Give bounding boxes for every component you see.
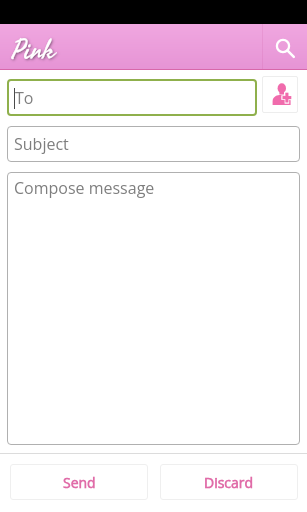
button[interactable]: Add contact [262, 76, 298, 113]
button[interactable]: Discard [160, 464, 298, 500]
staticText: Discard [204, 473, 254, 492]
staticText: Pink [12, 32, 55, 69]
button[interactable]: Compose message [7, 172, 300, 445]
staticText: Subject [14, 133, 69, 155]
staticText: To [15, 87, 34, 109]
button[interactable]: To [7, 79, 257, 116]
button[interactable]: Subject [7, 126, 300, 162]
button[interactable]: Send [10, 464, 148, 500]
staticText: Compose message [14, 177, 155, 199]
button[interactable]: Search [262, 24, 307, 69]
staticText: Send [63, 473, 96, 492]
